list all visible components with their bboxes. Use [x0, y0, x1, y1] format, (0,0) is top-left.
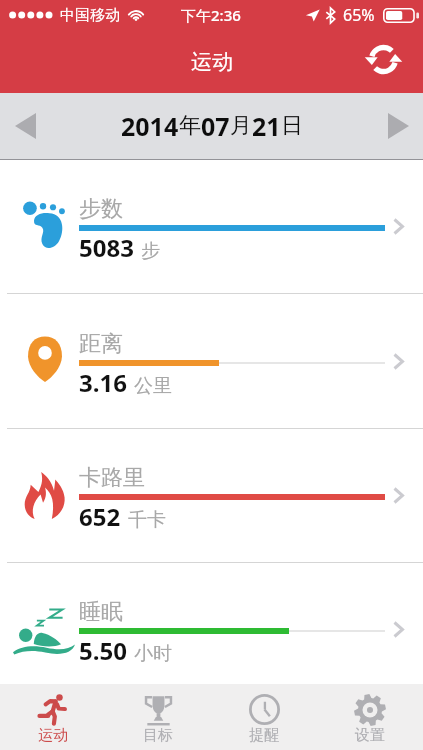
button[interactable]: 设置	[317, 684, 423, 750]
button[interactable]: 提醒	[211, 684, 317, 750]
staticText: 2014	[121, 109, 179, 143]
staticText: 下午2:36	[181, 5, 241, 25]
staticText: 652	[79, 500, 121, 533]
staticText: 月	[230, 112, 252, 140]
button[interactable]: Next day	[373, 99, 423, 153]
staticText: 日	[281, 112, 303, 140]
staticText: 小时	[134, 642, 172, 666]
staticText: 5083	[79, 231, 134, 264]
staticText: 65%	[343, 4, 375, 26]
staticText: 千卡	[128, 508, 166, 532]
staticText: 目标	[143, 726, 173, 745]
button[interactable]: 卡路里	[0, 429, 423, 562]
staticText: 年	[179, 112, 201, 140]
staticText: 卡路里	[79, 464, 145, 492]
staticText: 21	[252, 109, 281, 143]
staticText: 距离	[79, 330, 123, 358]
staticText: 公里	[134, 374, 172, 398]
button[interactable]: 目标	[105, 684, 211, 750]
button[interactable]: 睡眠	[0, 563, 423, 684]
staticText: 3.16	[79, 366, 127, 399]
staticText: 中国移动	[60, 6, 120, 25]
staticText: 运动	[38, 726, 68, 745]
button[interactable]: 距离	[0, 294, 423, 428]
button[interactable]: Refresh	[360, 36, 406, 82]
staticText: 5.50	[79, 634, 127, 667]
staticText: 步数	[79, 195, 123, 223]
staticText: 设置	[355, 726, 385, 745]
staticText: 运动	[191, 49, 233, 75]
staticText: 07	[201, 109, 230, 143]
button[interactable]: Previous day	[0, 99, 50, 153]
staticText: 提醒	[249, 726, 279, 745]
staticText: 步	[141, 239, 160, 263]
button[interactable]: 步数	[0, 160, 423, 293]
staticText: 睡眠	[79, 598, 123, 626]
button[interactable]: 运动	[0, 684, 105, 750]
